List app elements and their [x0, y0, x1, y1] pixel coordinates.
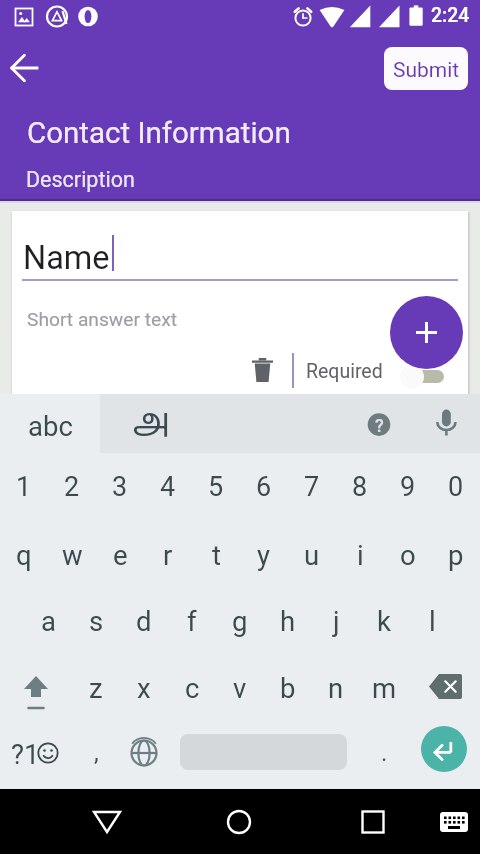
- staticText: 4: [160, 471, 176, 503]
- staticText: Description: [26, 167, 135, 192]
- staticText: 9: [400, 471, 416, 503]
- button[interactable]: 1: [0, 460, 48, 514]
- button[interactable]: c: [168, 661, 216, 715]
- staticText: Name: [23, 239, 110, 277]
- button[interactable]: 0: [432, 460, 480, 514]
- staticText: i: [357, 539, 364, 571]
- staticText: r: [163, 539, 173, 571]
- button[interactable]: 7: [288, 460, 336, 514]
- button[interactable]: f: [168, 594, 216, 648]
- button[interactable]: Switch keyboard: [431, 799, 477, 845]
- staticText: y: [257, 539, 271, 571]
- staticText: 2:24: [431, 4, 470, 27]
- staticText: 7: [304, 471, 320, 503]
- staticText: n: [328, 672, 344, 704]
- button[interactable]: 9: [384, 460, 432, 514]
- staticText: Submit: [393, 58, 460, 83]
- button[interactable]: Required toggle: [398, 359, 450, 391]
- staticText: 2: [64, 471, 80, 503]
- button[interactable]: u: [288, 528, 336, 582]
- staticText: h: [280, 605, 296, 637]
- button[interactable]: s: [72, 594, 120, 648]
- button[interactable]: 4: [144, 460, 192, 514]
- button[interactable]: Change language: [120, 729, 168, 777]
- staticText: u: [304, 539, 320, 571]
- button[interactable]: m: [360, 661, 408, 715]
- staticText: f: [187, 605, 197, 637]
- button[interactable]: Help: [363, 408, 395, 440]
- staticText: e: [113, 539, 128, 571]
- staticText: c: [185, 672, 200, 704]
- button[interactable]: i: [336, 528, 384, 582]
- staticText: 6: [256, 471, 272, 503]
- button[interactable]: Submit: [384, 47, 468, 90]
- button[interactable]: ,: [72, 726, 120, 780]
- staticText: l: [429, 605, 436, 637]
- staticText: .: [381, 739, 388, 767]
- staticText: 1: [16, 471, 32, 503]
- button[interactable]: Enter: [421, 726, 467, 772]
- button[interactable]: w: [48, 528, 96, 582]
- button[interactable]: h: [264, 594, 312, 648]
- button[interactable]: Recents: [350, 799, 396, 845]
- button[interactable]: Voice input: [431, 407, 463, 439]
- button[interactable]: b: [264, 661, 312, 715]
- button[interactable]: z: [72, 661, 120, 715]
- staticText: அ: [133, 402, 170, 443]
- staticText: k: [377, 605, 391, 637]
- staticText: b: [280, 672, 296, 704]
- staticText: g: [232, 605, 248, 637]
- staticText: m: [372, 672, 397, 704]
- button[interactable]: r: [144, 528, 192, 582]
- button[interactable]: o: [384, 528, 432, 582]
- button[interactable]: .: [360, 726, 408, 780]
- staticText: ,: [94, 739, 99, 767]
- staticText: 0: [448, 471, 464, 503]
- button[interactable]: 3: [96, 460, 144, 514]
- button[interactable]: d: [120, 594, 168, 648]
- button[interactable]: k: [360, 594, 408, 648]
- staticText: Short answer text: [27, 308, 177, 331]
- staticText: w: [62, 539, 83, 571]
- button[interactable]: Home: [216, 799, 262, 845]
- staticText: j: [333, 605, 340, 637]
- staticText: q: [16, 539, 32, 571]
- button[interactable]: n: [312, 661, 360, 715]
- button[interactable]: t: [192, 528, 240, 582]
- button[interactable]: 8: [336, 460, 384, 514]
- button[interactable]: Symbols and emoji: [4, 726, 60, 780]
- button[interactable]: Back: [4, 47, 45, 88]
- staticText: 5: [208, 471, 224, 503]
- button[interactable]: Delete: [240, 347, 284, 391]
- staticText: p: [448, 539, 464, 571]
- staticText: o: [400, 539, 416, 571]
- staticText: Required: [306, 360, 383, 383]
- staticText: 8: [352, 471, 368, 503]
- staticText: abc: [28, 410, 73, 442]
- button[interactable]: a: [24, 594, 72, 648]
- button[interactable]: j: [312, 594, 360, 648]
- staticText: ?: [375, 415, 384, 436]
- button[interactable]: Backspace: [421, 668, 469, 716]
- button[interactable]: q: [0, 528, 48, 582]
- button[interactable]: g: [216, 594, 264, 648]
- button[interactable]: Add question: [390, 296, 463, 369]
- button[interactable]: l: [408, 594, 456, 648]
- button[interactable]: v: [216, 661, 264, 715]
- button[interactable]: x: [120, 661, 168, 715]
- staticText: 3: [112, 471, 128, 503]
- staticText: Contact Information: [27, 116, 291, 151]
- staticText: x: [137, 672, 151, 704]
- button[interactable]: e: [96, 528, 144, 582]
- button[interactable]: 6: [240, 460, 288, 514]
- button[interactable]: Back: [84, 799, 130, 845]
- button[interactable]: 5: [192, 460, 240, 514]
- staticText: a: [41, 605, 56, 637]
- button[interactable]: p: [432, 528, 480, 582]
- button[interactable]: Shift: [12, 669, 60, 717]
- staticText: d: [136, 605, 152, 637]
- button[interactable]: y: [240, 528, 288, 582]
- staticText: v: [233, 672, 247, 704]
- button[interactable]: 2: [48, 460, 96, 514]
